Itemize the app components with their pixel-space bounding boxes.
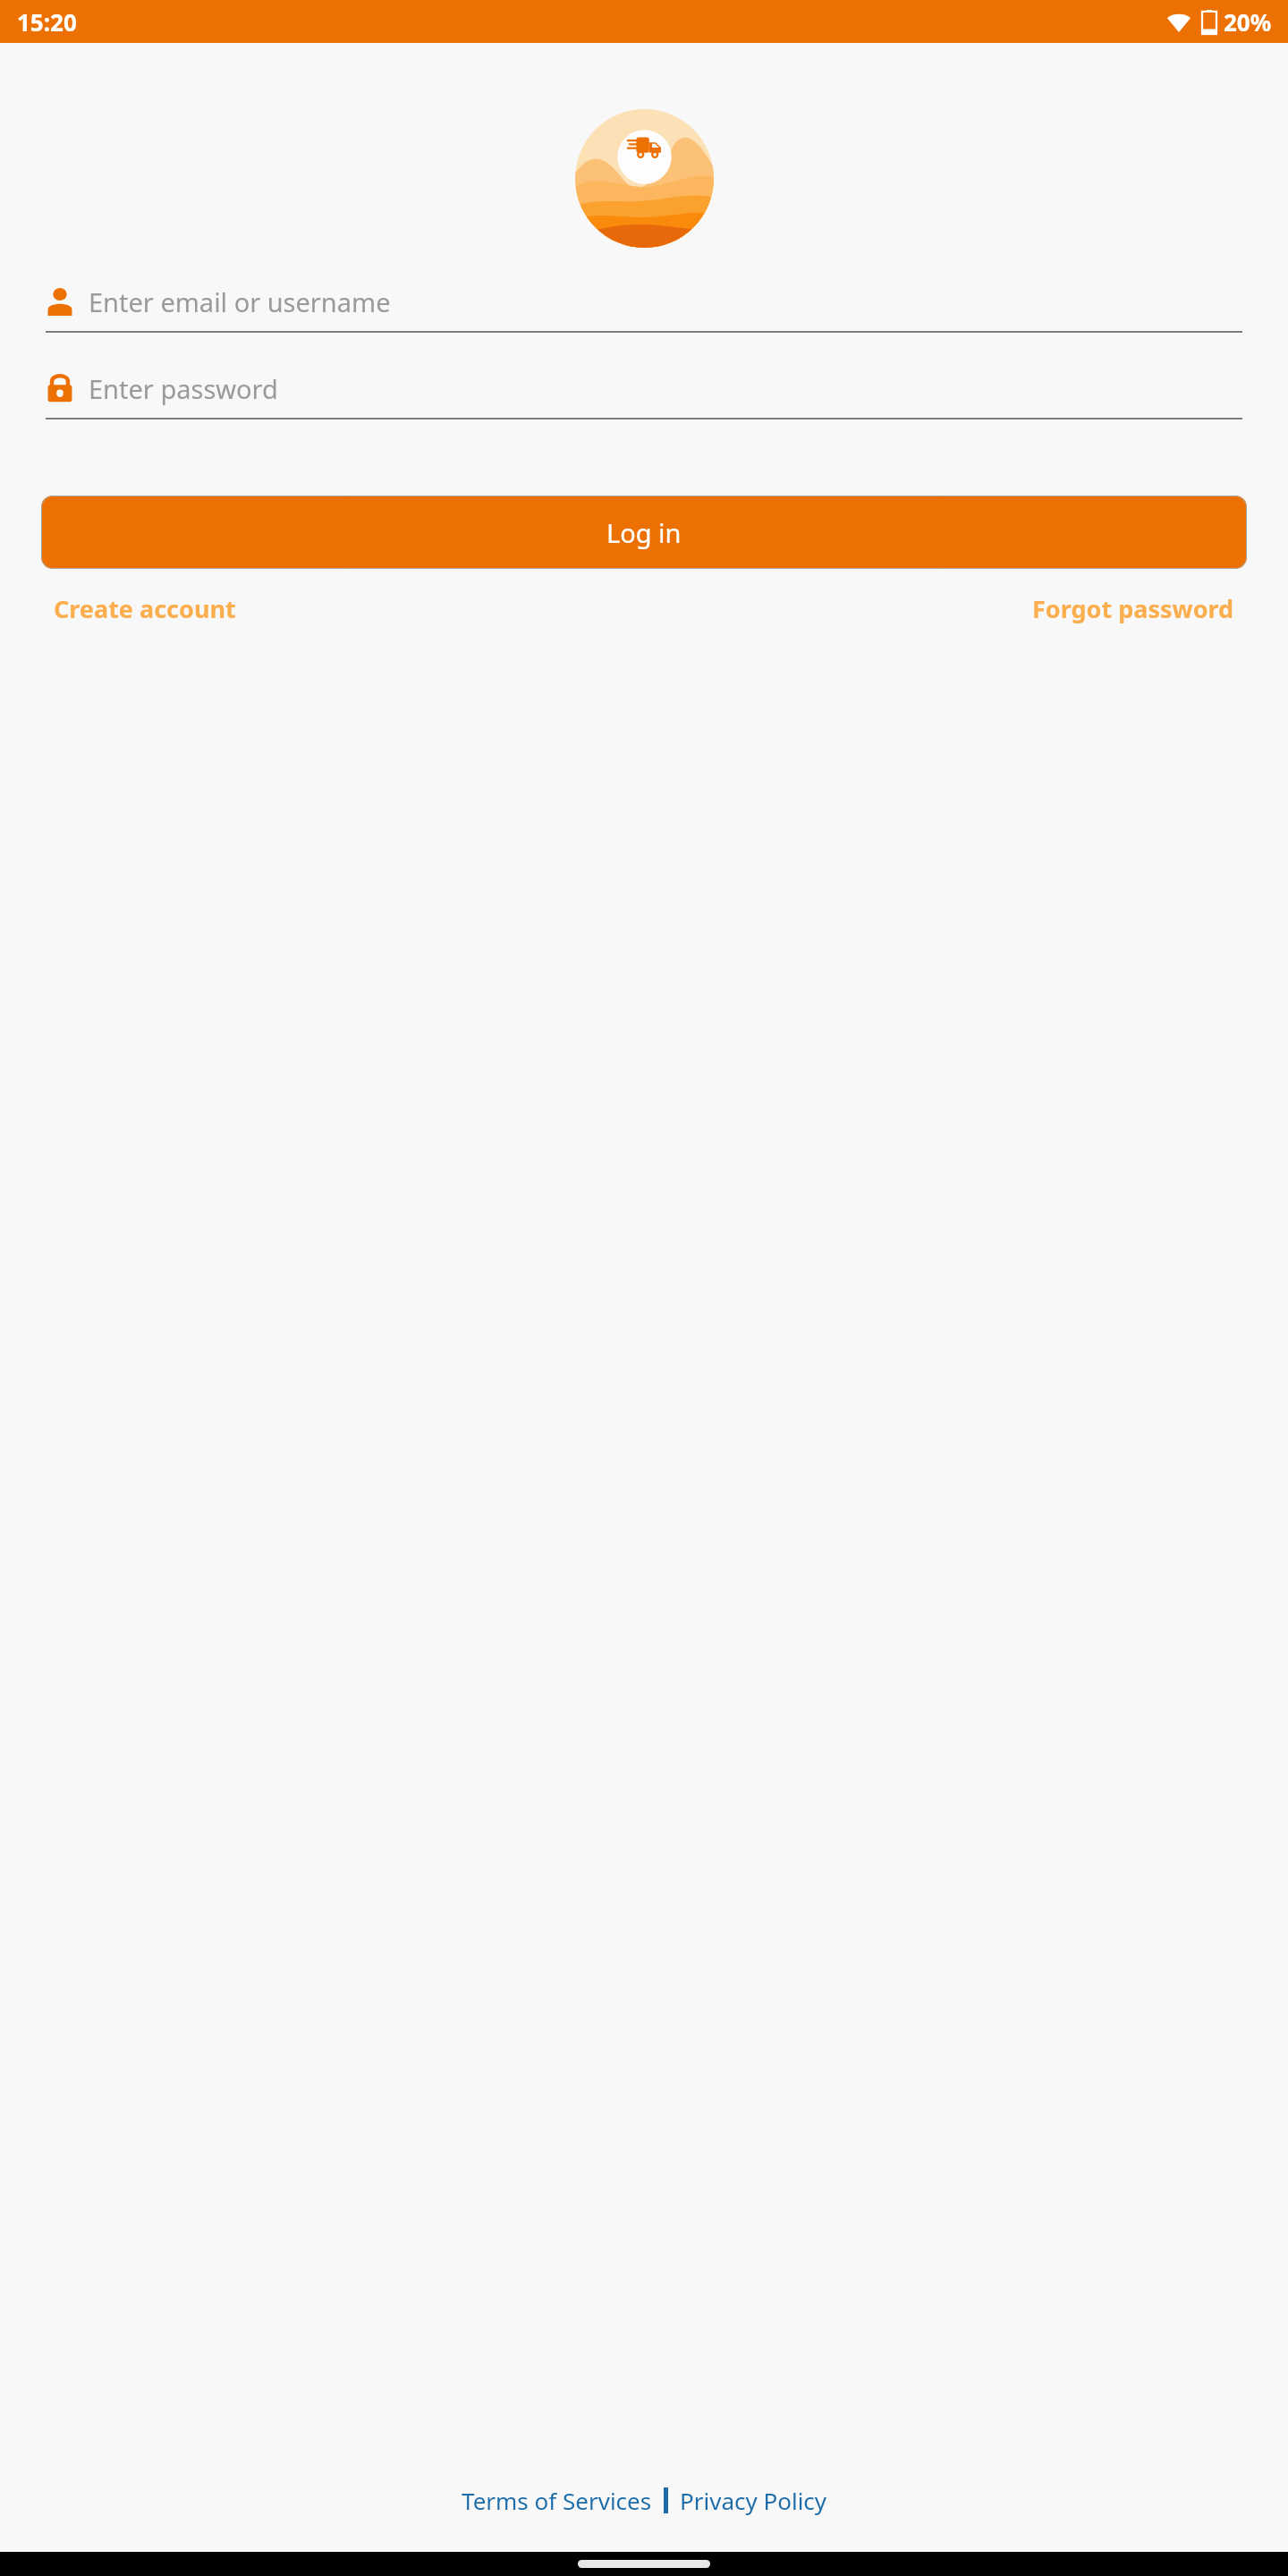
button[interactable]: Enter email or username [46, 277, 1242, 333]
button[interactable]: Forgot password [1029, 589, 1238, 629]
staticText: 15:20 [17, 6, 77, 38]
staticText: Log in [606, 515, 682, 550]
button[interactable]: Terms of Services [458, 2485, 656, 2516]
staticText: Enter email or username [89, 284, 391, 319]
staticText: Privacy Policy [680, 2485, 827, 2516]
button[interactable]: Log in [41, 496, 1247, 569]
staticText: Forgot password [1032, 592, 1234, 625]
staticText: 20% [1224, 6, 1272, 38]
button[interactable]: Enter password [46, 364, 1242, 419]
staticText: Create account [54, 592, 236, 625]
staticText: Enter password [89, 371, 278, 406]
staticText: Terms of Services [462, 2485, 652, 2516]
button[interactable]: Create account [50, 589, 240, 629]
button[interactable]: Privacy Policy [676, 2485, 831, 2516]
